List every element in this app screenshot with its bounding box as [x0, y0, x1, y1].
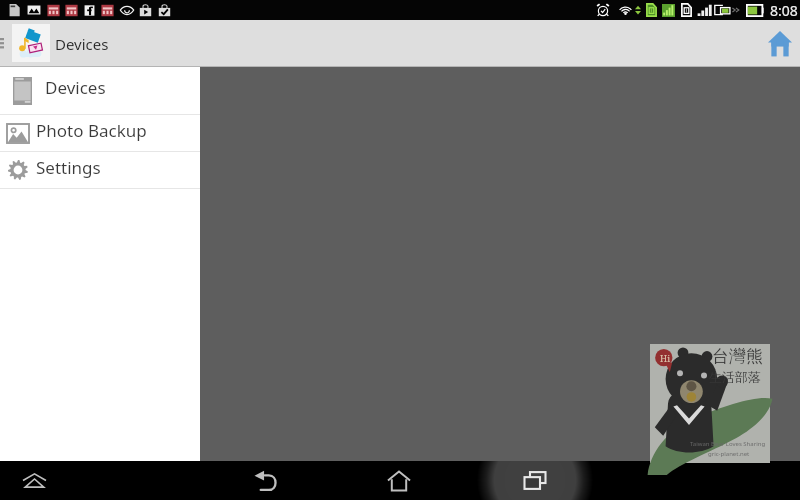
staticText: gric-planet.net: [708, 450, 750, 458]
button[interactable]: Devices: [0, 67, 200, 114]
staticText: 生活部落: [709, 369, 761, 385]
staticText: 台灣熊: [712, 346, 763, 367]
staticText: Devices: [55, 34, 109, 54]
button[interactable]: Recent apps: [474, 461, 596, 500]
staticText: Devices: [45, 76, 106, 99]
button[interactable]: Back: [245, 461, 287, 500]
staticText: 8:08: [770, 1, 798, 20]
button[interactable]: Photo Backup: [0, 115, 200, 151]
staticText: Taiwan Bear Loves Sharing: [690, 440, 766, 448]
button[interactable]: Collapse: [14, 461, 54, 500]
button[interactable]: Home: [760, 20, 800, 67]
button[interactable]: Open navigation: [0, 20, 8, 67]
staticText: Settings: [36, 156, 101, 179]
staticText: Photo Backup: [36, 119, 147, 142]
staticText: Hi: [660, 352, 671, 364]
button[interactable]: Settings: [0, 152, 200, 188]
button[interactable]: Home: [378, 461, 420, 500]
